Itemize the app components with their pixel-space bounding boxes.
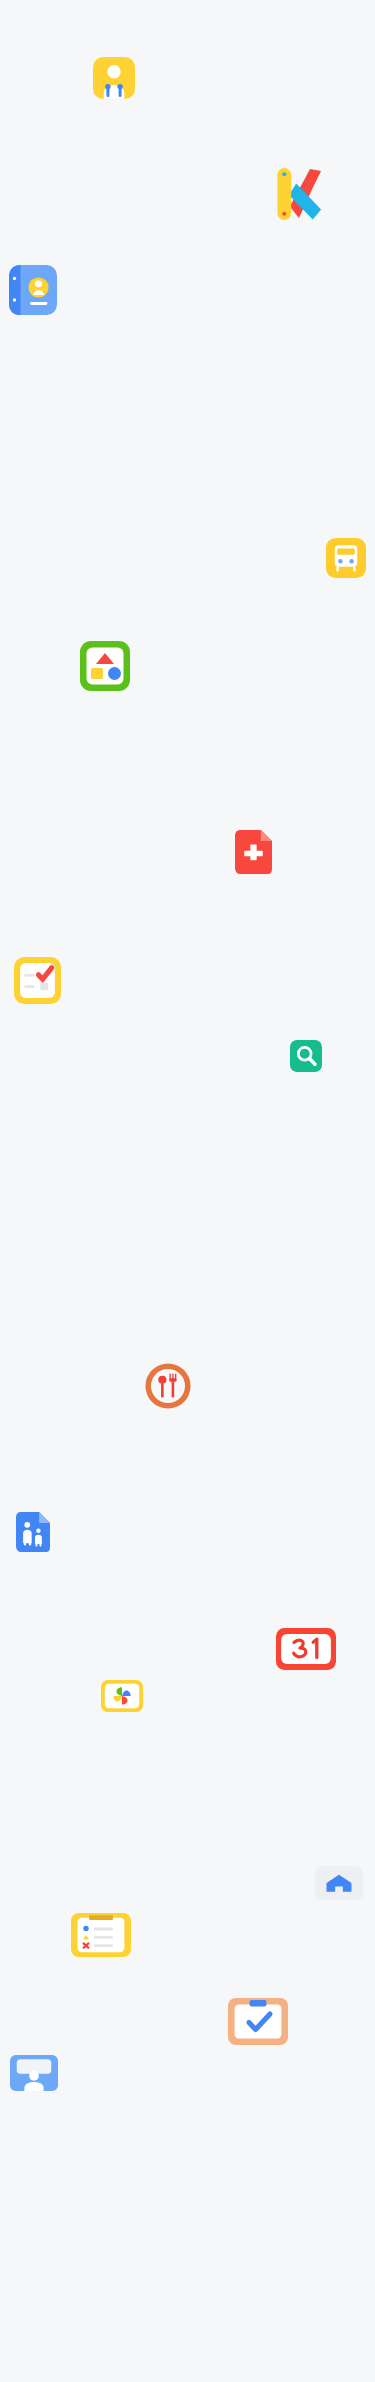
button[interactable]: Address book [10,2055,58,2091]
button[interactable]: Photos [101,1680,143,1712]
button[interactable]: Search [290,1040,322,1072]
button[interactable]: Contacts book [9,265,57,315]
button[interactable]: Home [315,1866,363,1900]
button[interactable]: Restaurants [144,1362,192,1410]
button[interactable]: Checklist [14,957,61,1004]
button[interactable]: Calendar [276,1628,336,1670]
button[interactable]: Tasks [228,1998,288,2045]
button[interactable]: Kotlin [276,168,322,220]
button[interactable]: Medical record [235,830,272,874]
button[interactable]: Family record [16,1512,50,1552]
button[interactable]: Shapes [80,641,130,691]
button[interactable]: Contacts [93,57,135,99]
button[interactable]: Bus [326,538,366,578]
button[interactable]: Survey [71,1913,131,1957]
